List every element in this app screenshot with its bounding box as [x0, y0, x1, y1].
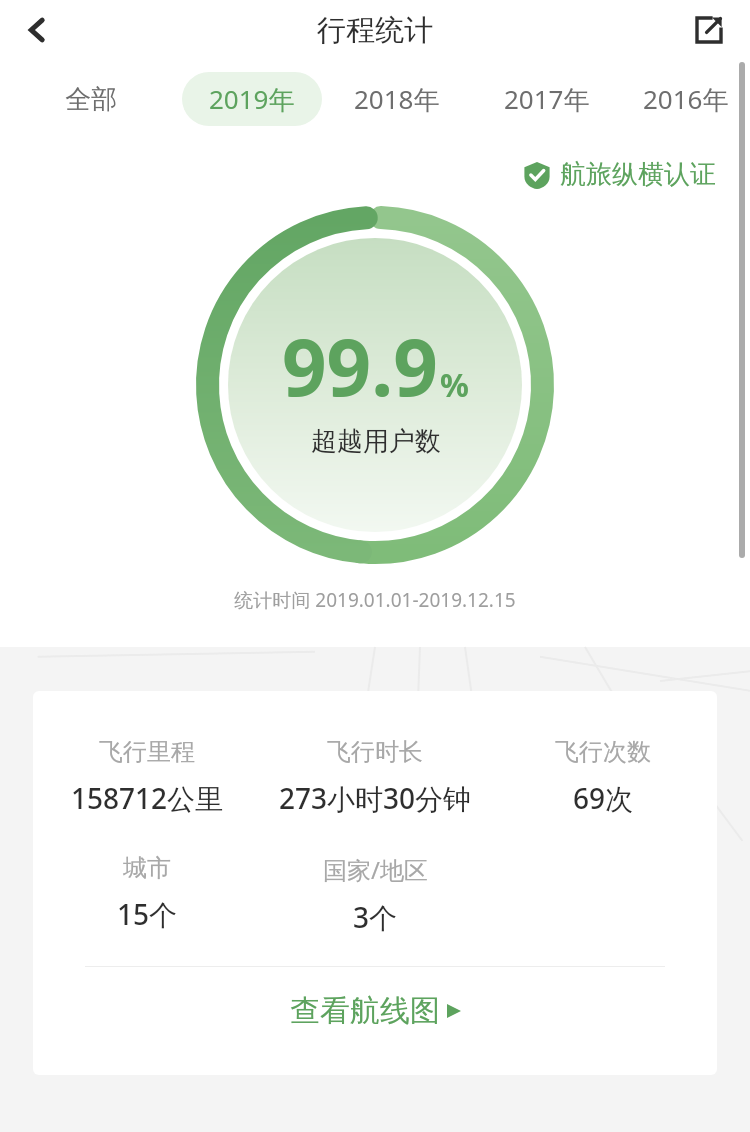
- staticText: 15个: [117, 895, 178, 933]
- staticText: 69次: [573, 779, 634, 817]
- button[interactable]: 2016年: [635, 72, 737, 126]
- button[interactable]: 2017年: [496, 72, 598, 126]
- staticText: 飞行里程: [99, 737, 195, 767]
- staticText: 飞行时长: [327, 737, 423, 767]
- button[interactable]: 2019年: [182, 72, 322, 126]
- staticText: 273小时30分钟: [279, 779, 472, 817]
- staticText: 国家/地区: [323, 853, 428, 886]
- button[interactable]: 查看航线图: [33, 967, 717, 1055]
- button[interactable]: 2018年: [346, 72, 448, 126]
- staticText: 行程统计: [317, 12, 433, 49]
- button[interactable]: 全部: [57, 72, 125, 126]
- staticText: 城市: [123, 853, 171, 883]
- staticText: 2017年: [504, 81, 590, 117]
- staticText: 2019年: [209, 81, 295, 117]
- staticText: 超越用户数: [311, 425, 441, 458]
- staticText: 3个: [353, 898, 398, 936]
- staticText: 航旅纵横认证: [560, 158, 716, 191]
- button[interactable]: Back: [10, 3, 64, 57]
- staticText: %: [440, 363, 469, 407]
- staticText: 2018年: [354, 81, 440, 117]
- staticText: 99.9: [282, 313, 438, 419]
- staticText: 2016年: [643, 81, 729, 117]
- staticText: 158712公里: [71, 779, 224, 817]
- staticText: 统计时间 2019.01.01-2019.12.15: [0, 587, 750, 613]
- staticText: 全部: [65, 83, 117, 116]
- button[interactable]: Share: [682, 3, 736, 57]
- staticText: 查看航线图: [290, 992, 440, 1030]
- staticText: 飞行次数: [555, 737, 651, 767]
